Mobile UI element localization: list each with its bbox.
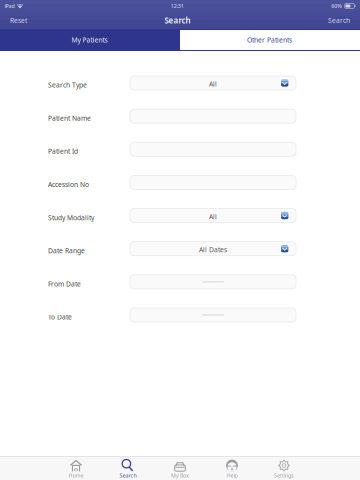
staticText: All [209,80,217,88]
staticText: All [209,212,217,221]
staticText: Study Modality [48,213,94,222]
staticText: My Patients [71,36,107,44]
staticText: My Box [171,472,189,479]
staticText: Home [68,472,83,479]
button[interactable]: Help [206,457,258,480]
staticText: To Date [48,313,72,321]
staticText: 60% [331,2,342,10]
button[interactable]: My Box [154,457,206,480]
button[interactable]: Search [321,12,357,29]
staticText: Settings [274,472,294,479]
staticText: From Date [48,279,81,288]
staticText: 12:31 [171,2,184,10]
staticText: Search Type [48,81,87,89]
button[interactable]: Home [50,457,102,480]
button[interactable]: Settings [258,457,310,480]
button[interactable]: Search [102,457,154,480]
button[interactable] [130,275,296,289]
staticText: Search [164,15,190,26]
button[interactable]: My Patients [0,29,179,51]
staticText: Other Patients [247,36,292,44]
staticText: All Dates [199,245,227,254]
staticText: Help [226,472,237,479]
staticText: Patient Id [48,147,78,156]
button[interactable]: Reset [3,12,34,29]
button[interactable]: All [130,76,296,90]
button[interactable]: Other Patients [179,29,360,51]
button[interactable] [130,175,296,189]
staticText: Search [119,472,136,479]
staticText: Reset [10,16,27,25]
staticText: Patient Name [48,114,91,123]
staticText: Accession No [48,180,89,189]
staticText: Date Range [48,246,85,255]
button[interactable] [130,308,296,322]
staticText: iPad [4,2,14,10]
button[interactable]: All Dates [130,242,296,256]
button[interactable]: All [130,209,296,223]
staticText: Search [328,16,350,25]
